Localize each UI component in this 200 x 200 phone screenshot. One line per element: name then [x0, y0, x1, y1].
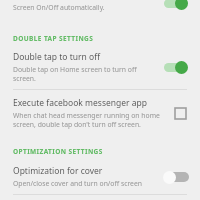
staticText: Execute facebook messenger app: [13, 97, 147, 109]
staticText: Double tap to turn off: [13, 51, 101, 63]
staticText: Open/close cover and turn on/off screen: [13, 179, 142, 188]
button[interactable]: Execute facebook messenger app: [0, 90, 200, 136]
button[interactable]: Screen On/Off automatically.: [0, 0, 200, 20]
button[interactable]: Optimization for cover: [0, 163, 200, 194]
staticText: Screen On/Off automatically.: [13, 3, 105, 12]
button[interactable]: Double tap to turn off toggle: [161, 57, 191, 77]
button[interactable]: Screen on off automatically toggle: [161, 0, 191, 13]
button[interactable]: Optimization for cover toggle: [161, 167, 191, 187]
button[interactable]: Double tap to turn off: [0, 49, 200, 89]
staticText: Optimization for cover: [13, 165, 103, 177]
staticText: When chat head messenger running on home…: [13, 111, 163, 129]
staticText: Double tap on Home screen to turn off sc…: [13, 65, 155, 83]
staticText: DOUBLE TAP SETTINGS: [13, 34, 94, 43]
button[interactable]: Execute facebook messenger app checkbox: [169, 102, 191, 124]
staticText: OPTIMIZATION SETTINGS: [13, 147, 103, 156]
